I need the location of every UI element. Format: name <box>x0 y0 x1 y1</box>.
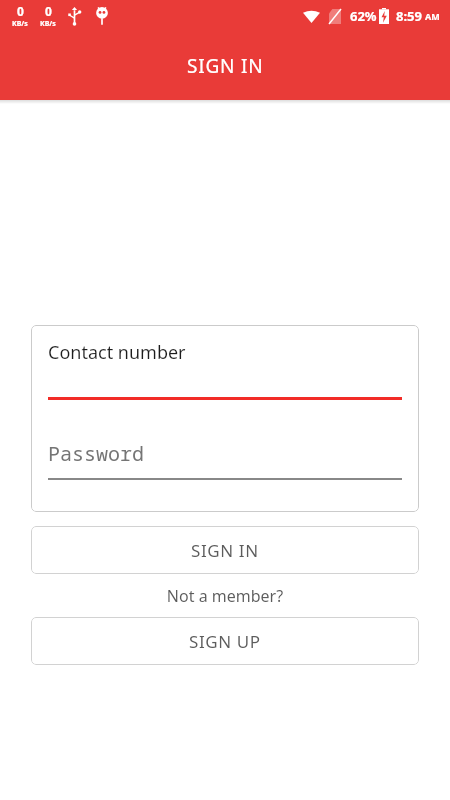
staticText: SIGN IN <box>191 539 259 562</box>
staticText: SIGN IN <box>187 53 264 79</box>
staticText: AM <box>425 10 440 22</box>
staticText: 0 <box>17 3 24 19</box>
staticText: 62% <box>350 7 377 25</box>
button[interactable]: Password <box>48 440 402 480</box>
staticText: Not a member? <box>0 585 450 607</box>
staticText: SIGN UP <box>189 630 261 653</box>
staticText: Password <box>48 440 144 467</box>
button[interactable]: SIGN UP <box>31 617 419 665</box>
staticText: KB/s <box>12 19 28 29</box>
staticText: 8:59 <box>396 7 422 25</box>
staticText: Contact number <box>48 340 186 365</box>
button[interactable]: Contact number <box>48 338 402 400</box>
button[interactable]: SIGN IN <box>31 526 419 574</box>
staticText: KB/s <box>40 19 56 29</box>
staticText: 0 <box>45 3 52 19</box>
